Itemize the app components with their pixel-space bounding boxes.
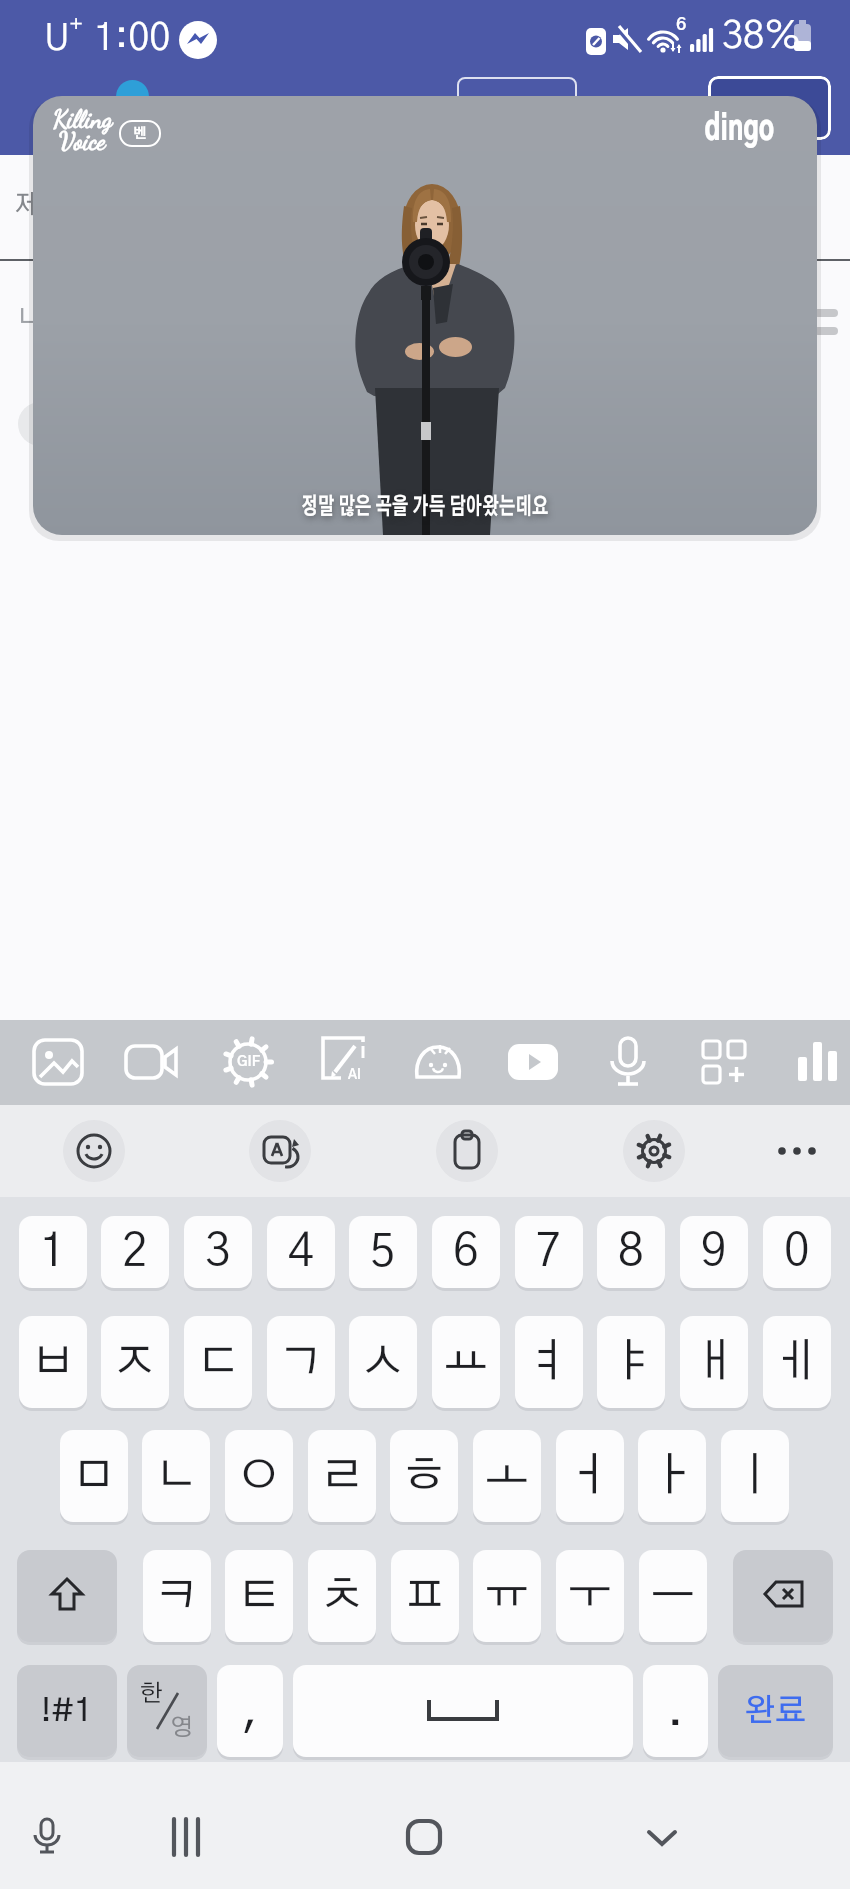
button[interactable] xyxy=(398,1022,478,1102)
staticText: . xyxy=(667,1687,684,1735)
staticText: 5 xyxy=(370,1229,396,1275)
staticText: ㄷ xyxy=(195,1339,241,1385)
staticText: 4 xyxy=(288,1229,314,1275)
staticText: ㅏ xyxy=(649,1453,695,1499)
button[interactable]: AI xyxy=(303,1022,383,1102)
staticText: ㅂ xyxy=(30,1339,76,1385)
button[interactable]: 7 xyxy=(515,1216,583,1288)
staticText: U xyxy=(44,21,70,57)
button[interactable]: ㅍ xyxy=(391,1550,459,1642)
staticText: 1:00 xyxy=(94,20,171,58)
button[interactable] xyxy=(493,1022,573,1102)
button[interactable] xyxy=(588,1022,668,1102)
button[interactable]: ㅡ xyxy=(639,1550,707,1642)
staticText: ㄹ xyxy=(319,1453,365,1499)
button[interactable]: ㅜ xyxy=(556,1550,624,1642)
staticText: ㅜ xyxy=(567,1573,613,1619)
button[interactable]: ㅎ xyxy=(390,1430,458,1522)
button[interactable]: ㅛ xyxy=(432,1316,500,1408)
staticText: !#1 xyxy=(41,1695,93,1727)
button[interactable]: ㄹ xyxy=(308,1430,376,1522)
button[interactable]: ㅠ xyxy=(473,1550,541,1642)
button[interactable]: ㅔ xyxy=(763,1316,831,1408)
button[interactable]: Killing xyxy=(33,96,817,535)
button[interactable]: ㅌ xyxy=(225,1550,293,1642)
button[interactable]: ㅇ xyxy=(225,1430,293,1522)
button[interactable] xyxy=(632,1807,692,1867)
button[interactable] xyxy=(436,1120,498,1182)
staticText: ㅓ xyxy=(567,1453,613,1499)
staticText: ㅅ xyxy=(360,1339,406,1385)
staticText: ㅁ xyxy=(71,1453,117,1499)
button[interactable]: ㅕ xyxy=(515,1316,583,1408)
staticText: Voice xyxy=(59,126,106,156)
staticText: ㄴ xyxy=(153,1453,199,1499)
button[interactable] xyxy=(708,76,831,140)
button[interactable]: 5 xyxy=(349,1216,417,1288)
button[interactable]: 한 xyxy=(127,1665,207,1757)
button[interactable] xyxy=(766,1120,828,1182)
button[interactable] xyxy=(18,1022,98,1102)
button[interactable] xyxy=(733,1550,833,1642)
staticText: ㄱ xyxy=(278,1339,324,1385)
button[interactable]: 0 xyxy=(763,1216,831,1288)
button[interactable]: ㅗ xyxy=(473,1430,541,1522)
button[interactable]: 1 xyxy=(19,1216,87,1288)
staticText: 38% xyxy=(722,18,802,56)
staticText: ㅗ xyxy=(484,1453,530,1499)
staticText: ㅎ xyxy=(401,1453,447,1499)
staticText: 벤 xyxy=(133,127,147,141)
button[interactable]: . xyxy=(643,1665,708,1757)
staticText: ㅡ xyxy=(650,1573,696,1619)
staticText: 한 xyxy=(140,1682,164,1706)
button[interactable]: ㄴ xyxy=(142,1430,210,1522)
button[interactable]: ㄷ xyxy=(184,1316,252,1408)
button[interactable] xyxy=(778,1022,850,1102)
button[interactable]: ㄱ xyxy=(267,1316,335,1408)
staticText: 0 xyxy=(784,1229,810,1275)
button[interactable]: ㅐ xyxy=(680,1316,748,1408)
staticText: ㅣ xyxy=(732,1453,778,1499)
button[interactable] xyxy=(112,1022,192,1102)
button[interactable]: 9 xyxy=(680,1216,748,1288)
staticText: 6 xyxy=(453,1229,479,1275)
staticText: 8 xyxy=(618,1229,644,1275)
button[interactable] xyxy=(17,1550,117,1642)
button[interactable]: 완료 xyxy=(718,1665,833,1757)
button[interactable] xyxy=(249,1120,311,1182)
button[interactable]: ㅑ xyxy=(597,1316,665,1408)
button[interactable]: ㅣ xyxy=(721,1430,789,1522)
button[interactable] xyxy=(808,300,850,344)
button[interactable]: 4 xyxy=(267,1216,335,1288)
staticText: GIF xyxy=(237,1055,260,1069)
button[interactable]: , xyxy=(217,1665,283,1757)
staticText: ㅇ xyxy=(236,1453,282,1499)
button[interactable]: 2 xyxy=(101,1216,169,1288)
staticText: 제 xyxy=(15,192,42,220)
staticText: 9 xyxy=(701,1229,727,1275)
button[interactable]: GIF xyxy=(208,1022,288,1102)
button[interactable] xyxy=(684,1022,764,1102)
button[interactable]: ㅁ xyxy=(60,1430,128,1522)
button[interactable] xyxy=(623,1120,685,1182)
button[interactable] xyxy=(457,77,577,125)
button[interactable]: ㅂ xyxy=(19,1316,87,1408)
button[interactable] xyxy=(17,1807,77,1867)
button[interactable] xyxy=(293,1665,633,1757)
button[interactable]: 8 xyxy=(597,1216,665,1288)
button[interactable]: ㅈ xyxy=(101,1316,169,1408)
button[interactable] xyxy=(156,1807,216,1867)
button[interactable]: ㅊ xyxy=(308,1550,376,1642)
button[interactable]: 6 xyxy=(432,1216,500,1288)
staticText: , xyxy=(242,1687,259,1735)
button[interactable]: ㅋ xyxy=(143,1550,211,1642)
button[interactable]: 3 xyxy=(184,1216,252,1288)
staticText: 7 xyxy=(536,1229,562,1275)
button[interactable]: ㅓ xyxy=(556,1430,624,1522)
button[interactable]: ㅏ xyxy=(638,1430,706,1522)
button[interactable] xyxy=(394,1807,454,1867)
staticText: AI xyxy=(348,1069,361,1082)
button[interactable]: !#1 xyxy=(17,1665,117,1757)
button[interactable] xyxy=(63,1120,125,1182)
button[interactable]: ㅅ xyxy=(349,1316,417,1408)
